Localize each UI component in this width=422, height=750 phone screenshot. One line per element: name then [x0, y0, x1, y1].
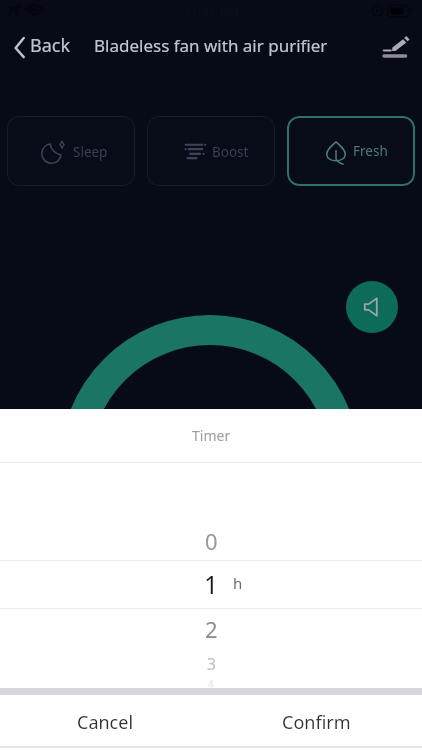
staticText: 1: [204, 567, 219, 601]
staticText: 0: [205, 526, 218, 556]
staticText: Boost: [212, 143, 249, 161]
staticText: Timer: [192, 426, 231, 445]
staticText: h: [233, 573, 243, 593]
button[interactable]: Boost: [147, 116, 275, 186]
button[interactable]: Fresh: [287, 116, 415, 186]
button[interactable]: Sleep: [7, 116, 135, 186]
button[interactable]: Sound: [346, 281, 398, 333]
staticText: 2: [205, 614, 218, 644]
staticText: 4: [208, 677, 214, 691]
button[interactable]: Confirm: [211, 695, 422, 750]
staticText: Fresh: [353, 142, 388, 160]
staticText: Confirm: [282, 710, 351, 735]
staticText: Cancel: [77, 710, 134, 735]
button[interactable]: Back: [12, 33, 71, 58]
button[interactable]: Edit: [380, 28, 410, 62]
staticText: Back: [30, 33, 71, 58]
staticText: 3: [207, 653, 216, 674]
button[interactable]: Cancel: [0, 695, 211, 750]
staticText: Bladeless fan with air purifier: [94, 34, 328, 57]
staticText: Sleep: [73, 143, 108, 161]
